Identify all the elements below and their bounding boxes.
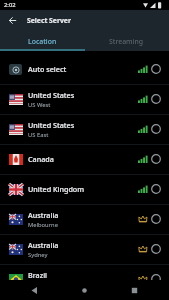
staticText: Australia — [28, 210, 59, 220]
staticText: Sydney — [28, 251, 48, 259]
button[interactable]: Streaming — [84, 28, 169, 51]
button[interactable]: Australia — [0, 234, 169, 264]
staticText: United Kingdom — [28, 184, 85, 194]
button[interactable] — [131, 287, 138, 294]
staticText: Streaming — [109, 37, 144, 46]
staticText: US East — [28, 131, 49, 139]
staticText: Canada — [28, 154, 54, 164]
staticText: Select Server — [27, 16, 71, 25]
staticText: Auto select — [28, 64, 67, 74]
staticText: Brazil — [28, 270, 48, 280]
button[interactable]: United States — [0, 114, 169, 144]
staticText: Melbourne — [28, 221, 58, 229]
staticText: United States — [28, 90, 75, 100]
staticText: 2:02 — [4, 1, 16, 9]
staticText: Sao Paulo — [28, 281, 55, 289]
button[interactable]: Brazil — [0, 264, 169, 294]
staticText: United States — [28, 120, 75, 130]
staticText: Australia — [28, 240, 59, 250]
staticText: Location — [28, 37, 57, 46]
button[interactable] — [7, 15, 17, 25]
button[interactable] — [81, 287, 88, 294]
button[interactable]: United Kingdom — [0, 174, 169, 204]
button[interactable]: Australia — [0, 204, 169, 234]
button[interactable]: United States — [0, 84, 169, 114]
button[interactable]: Canada — [0, 144, 169, 174]
button[interactable]: Auto select — [0, 54, 169, 84]
button[interactable] — [31, 287, 38, 294]
staticText: US West — [28, 101, 51, 109]
button[interactable]: Location — [0, 28, 84, 51]
